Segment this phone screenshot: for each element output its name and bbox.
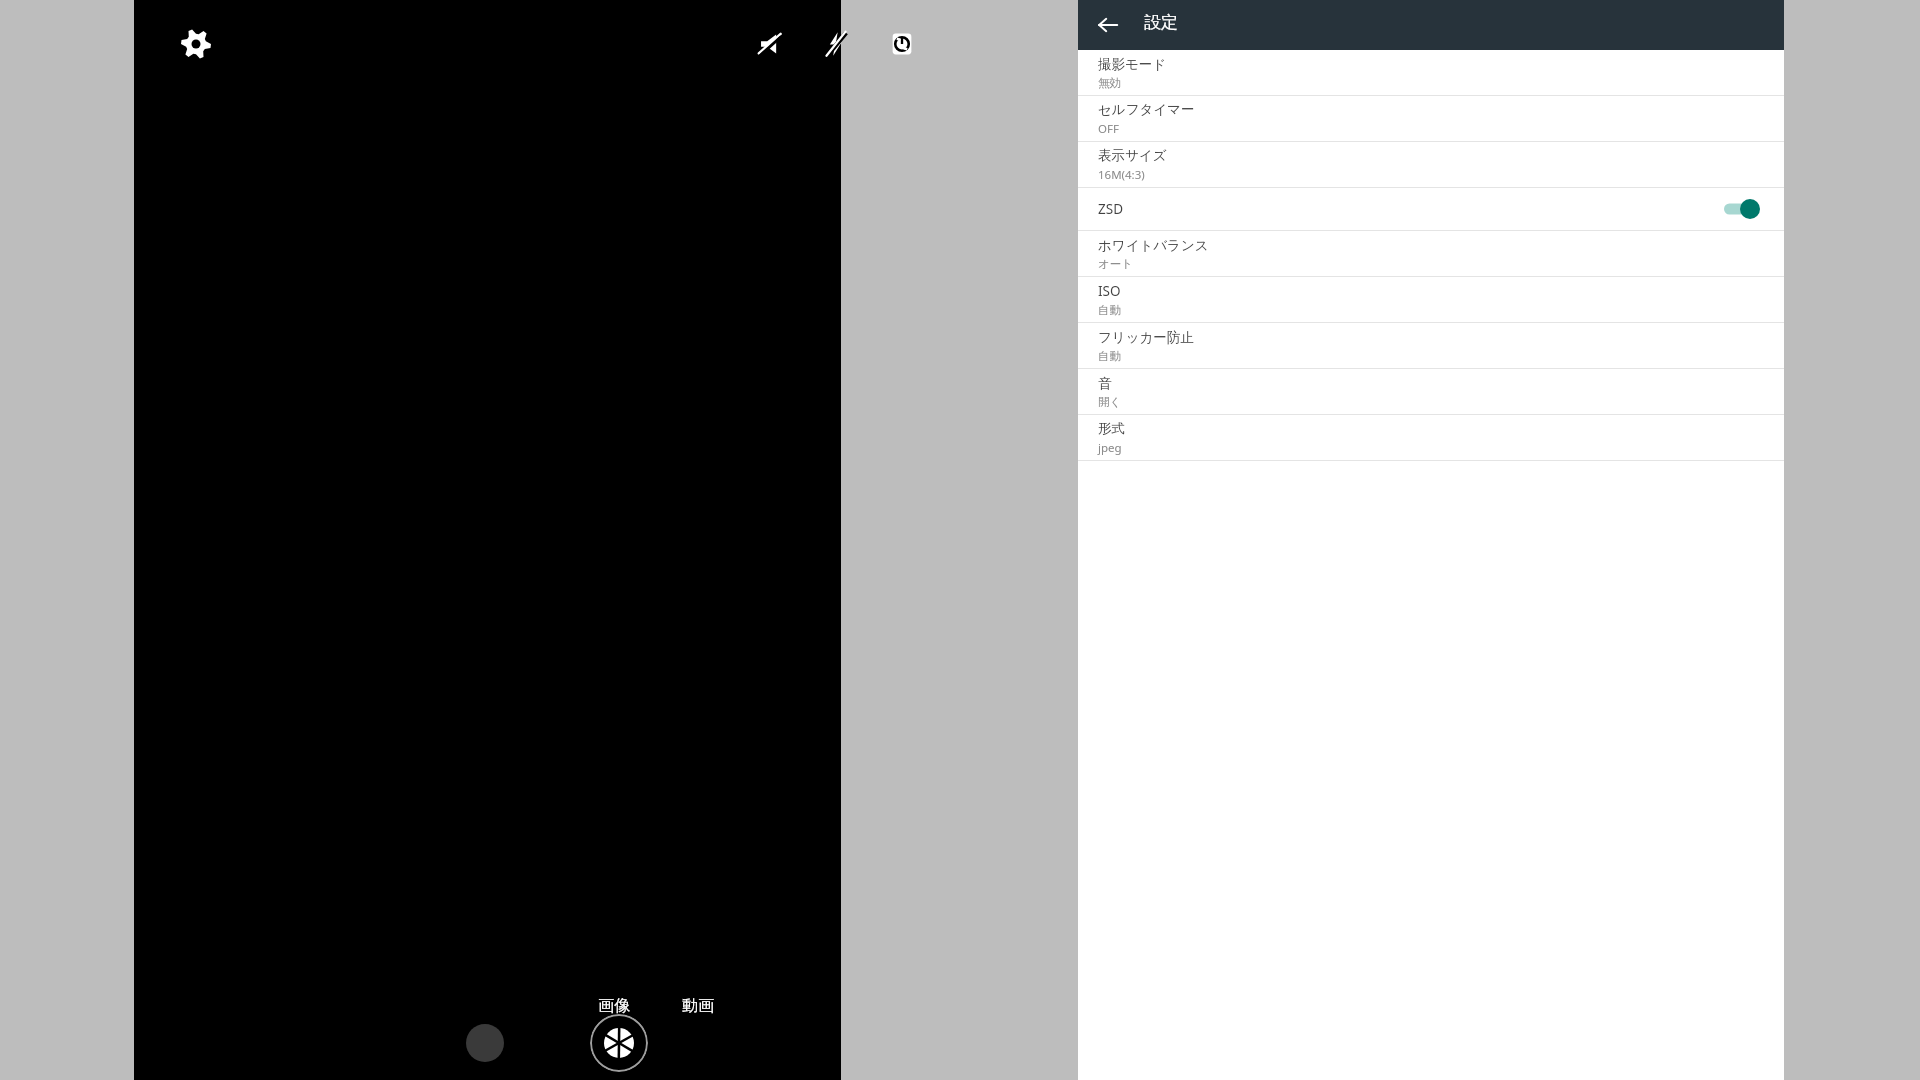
button[interactable]: ZSD: [1078, 188, 1784, 230]
button[interactable]: 画像: [592, 992, 636, 1020]
button[interactable]: セルフタイマー: [1078, 96, 1784, 141]
button[interactable]: 音: [1078, 369, 1784, 414]
staticText: 開く: [1098, 395, 1122, 409]
button[interactable]: 動画: [676, 992, 720, 1020]
staticText: 設定: [1144, 12, 1178, 33]
button[interactable]: Settings: [170, 18, 222, 70]
staticText: 無効: [1098, 76, 1121, 90]
button[interactable]: Shutter: [590, 1014, 648, 1072]
button[interactable]: Gallery: [466, 1024, 504, 1062]
staticText: OFF: [1098, 121, 1119, 137]
button[interactable]: Flash off: [812, 20, 860, 68]
staticText: ZSD: [1098, 200, 1123, 218]
staticText: 音: [1098, 375, 1112, 392]
button[interactable]: ホワイトバランス: [1078, 231, 1784, 276]
button[interactable]: Sound off: [746, 20, 794, 68]
staticText: 動画: [682, 996, 714, 1016]
button[interactable]: フリッカー防止: [1078, 323, 1784, 368]
staticText: ISO: [1098, 282, 1121, 300]
staticText: ホワイトバランス: [1098, 237, 1209, 254]
staticText: 画像: [598, 996, 630, 1016]
staticText: jpeg: [1098, 440, 1122, 456]
button[interactable]: 撮影モード: [1078, 50, 1784, 95]
staticText: 16M(4:3): [1098, 167, 1145, 183]
button[interactable]: Switch camera: [878, 20, 926, 68]
staticText: 自動: [1098, 303, 1121, 317]
button[interactable]: ISO: [1078, 277, 1784, 322]
button[interactable]: ZSD toggle: [1722, 196, 1762, 222]
staticText: フリッカー防止: [1098, 329, 1194, 346]
staticText: 撮影モード: [1098, 56, 1167, 73]
button[interactable]: Back: [1090, 7, 1126, 43]
button[interactable]: 形式: [1078, 415, 1784, 460]
staticText: 形式: [1098, 420, 1125, 437]
button[interactable]: 表示サイズ: [1078, 142, 1784, 187]
staticText: 表示サイズ: [1098, 147, 1167, 164]
staticText: セルフタイマー: [1098, 101, 1195, 118]
staticText: 自動: [1098, 349, 1121, 363]
staticText: オート: [1098, 257, 1134, 271]
